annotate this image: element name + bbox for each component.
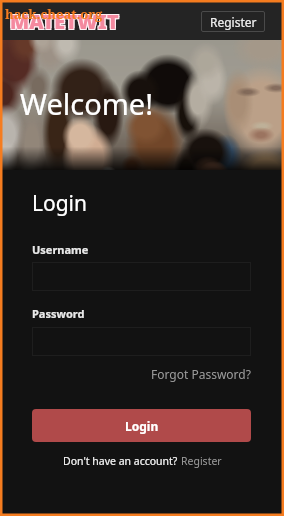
staticText: MATETWIT — [10, 9, 119, 35]
staticText: Welcome! — [20, 84, 153, 123]
staticText: Don't have an account? — [63, 454, 181, 468]
staticText: Username — [32, 242, 89, 257]
staticText: Password — [32, 306, 85, 321]
button[interactable]: Login — [32, 409, 251, 442]
staticText: MATETWIT — [9, 8, 118, 34]
staticText: MATETWIT — [9, 10, 118, 36]
staticText: Login — [32, 189, 88, 218]
staticText: Forgot Password? — [151, 366, 251, 382]
staticText: hack.cheat.org — [5, 5, 103, 23]
staticText: Login — [125, 418, 159, 434]
button[interactable]: Register — [201, 11, 265, 32]
button[interactable]: Forgot Password? — [151, 366, 251, 382]
button[interactable] — [32, 262, 251, 291]
button[interactable] — [32, 327, 251, 356]
staticText: Register — [210, 14, 257, 30]
button[interactable]: Register — [181, 454, 222, 468]
staticText: MATETWIT — [11, 8, 120, 34]
staticText: Register — [181, 454, 222, 468]
staticText: MATETWIT — [11, 10, 120, 36]
